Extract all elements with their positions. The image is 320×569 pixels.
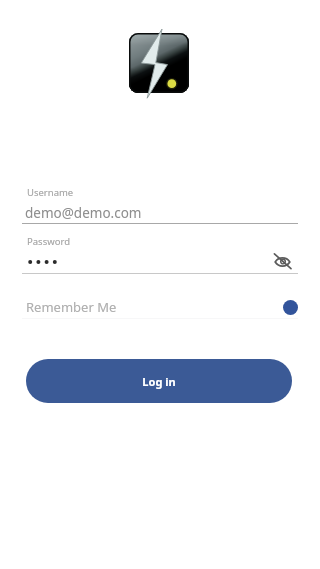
- staticText: demo@demo.com: [25, 204, 142, 222]
- staticText: Username: [27, 186, 74, 199]
- staticText: Password: [27, 235, 70, 248]
- staticText: Log in: [142, 374, 176, 389]
- button[interactable]: Log in: [26, 359, 292, 403]
- button[interactable]: Remember Me: [22, 296, 298, 318]
- staticText: Remember Me: [26, 298, 117, 316]
- button[interactable]: Show password: [268, 247, 298, 277]
